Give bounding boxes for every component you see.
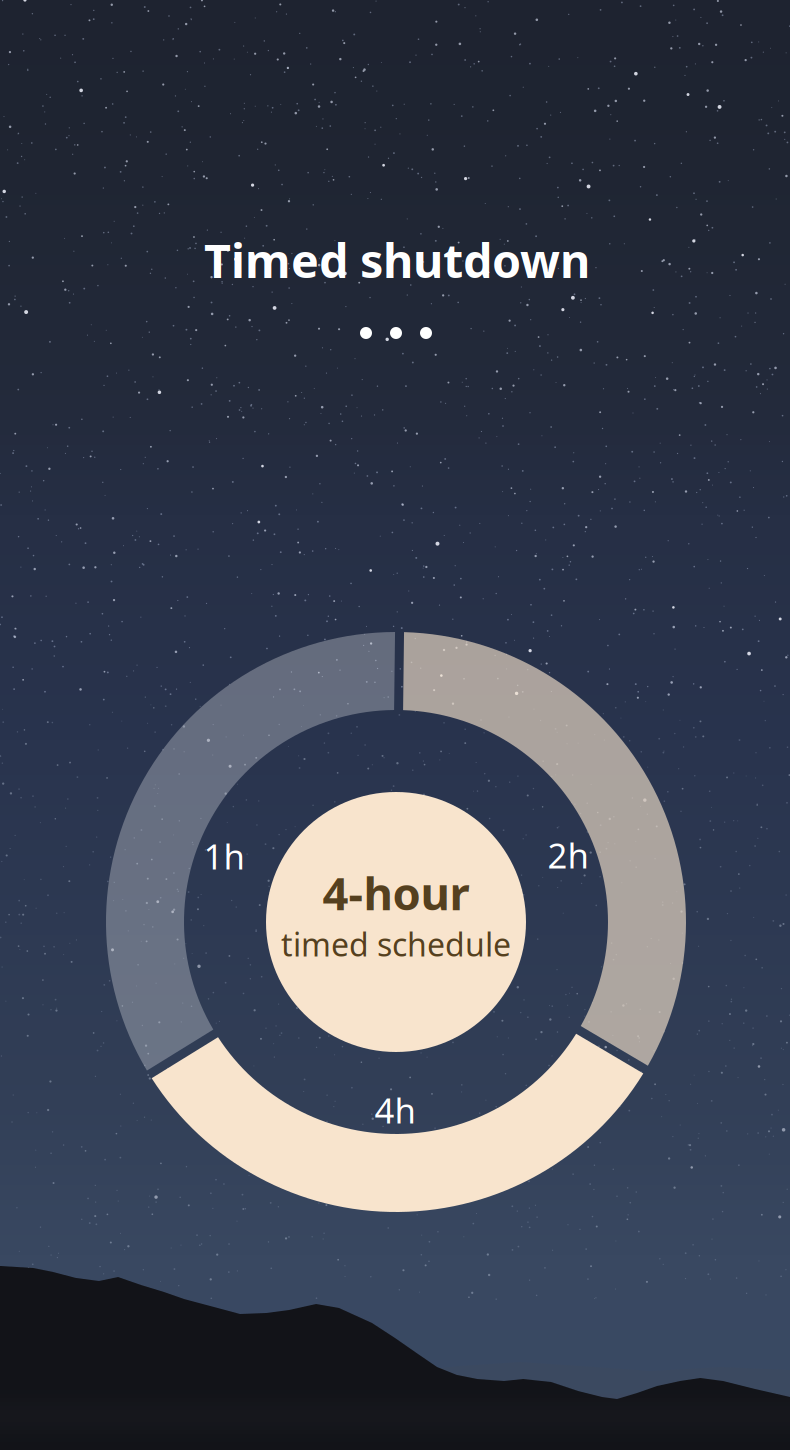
staticText: timed schedule [281, 923, 511, 965]
button[interactable]: 1 hour [106, 632, 395, 1071]
staticText: Timed shutdown [204, 229, 590, 291]
staticText: 4-hour [322, 863, 469, 923]
staticText: 4h [374, 1087, 415, 1133]
staticText: 1h [203, 833, 244, 879]
button[interactable]: 2 hours [403, 632, 686, 1066]
button[interactable]: 4 hours, selected [152, 1034, 643, 1212]
staticText: 2h [547, 832, 588, 878]
